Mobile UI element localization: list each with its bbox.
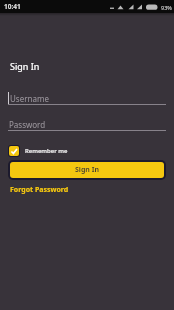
staticText: 10:41 (4, 2, 21, 11)
staticText: Sign In (75, 165, 100, 175)
button[interactable]: Password (8, 118, 166, 131)
staticText: Username (10, 93, 49, 104)
staticText: Sign In (10, 60, 40, 72)
staticText: 93% (161, 4, 172, 11)
staticText: Password (9, 119, 46, 130)
staticText: Remember me (25, 147, 68, 155)
button[interactable]: Sign In (10, 162, 164, 178)
button[interactable]: Forgot Password (10, 185, 69, 195)
button[interactable]: Username (8, 92, 166, 105)
button[interactable]: Remember me (8, 145, 68, 157)
